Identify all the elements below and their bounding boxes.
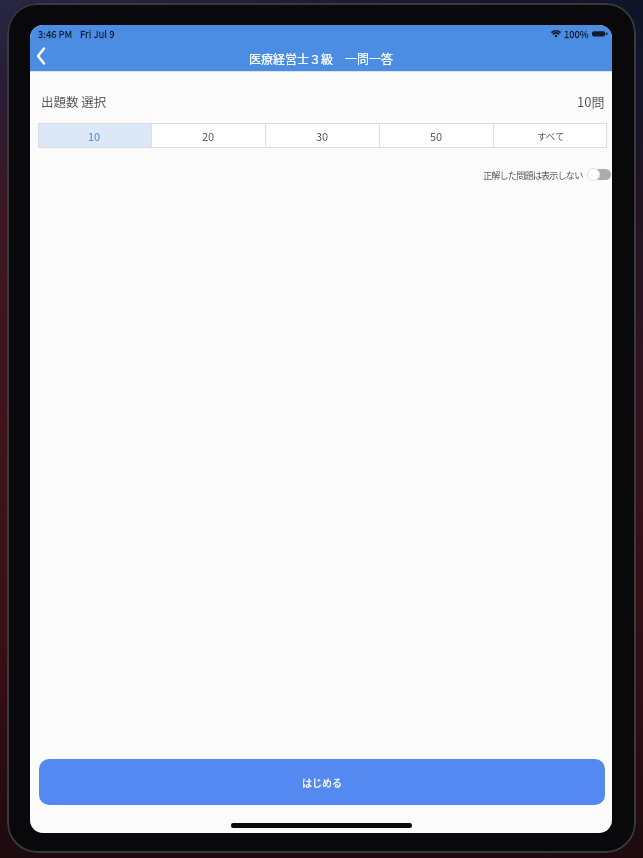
button[interactable]: 正解した問題は表示しない bbox=[483, 167, 611, 182]
button[interactable] bbox=[30, 42, 55, 70]
staticText: 10問 bbox=[577, 92, 605, 111]
button[interactable]: 20 bbox=[152, 123, 265, 148]
button[interactable]: 50 bbox=[380, 123, 493, 148]
staticText: 10 bbox=[88, 128, 101, 144]
button[interactable]: すべて bbox=[494, 123, 607, 148]
staticText: 20 bbox=[202, 128, 215, 144]
staticText: 医療経営士３級 一問一答 bbox=[249, 50, 394, 67]
staticText: 出題数 選択 bbox=[41, 92, 107, 110]
staticText: Fri Jul 9 bbox=[80, 27, 115, 41]
staticText: 100% bbox=[564, 27, 589, 41]
staticText: 50 bbox=[430, 128, 443, 144]
staticText: 正解した問題は表示しない bbox=[483, 168, 583, 181]
button[interactable]: 30 bbox=[266, 123, 379, 148]
staticText: はじめる bbox=[302, 775, 342, 789]
staticText: すべて bbox=[537, 129, 565, 143]
staticText: 30 bbox=[316, 128, 329, 144]
button[interactable]: 10 bbox=[38, 123, 151, 148]
button[interactable]: はじめる bbox=[39, 759, 605, 805]
staticText: 3:46 PM bbox=[38, 27, 73, 41]
